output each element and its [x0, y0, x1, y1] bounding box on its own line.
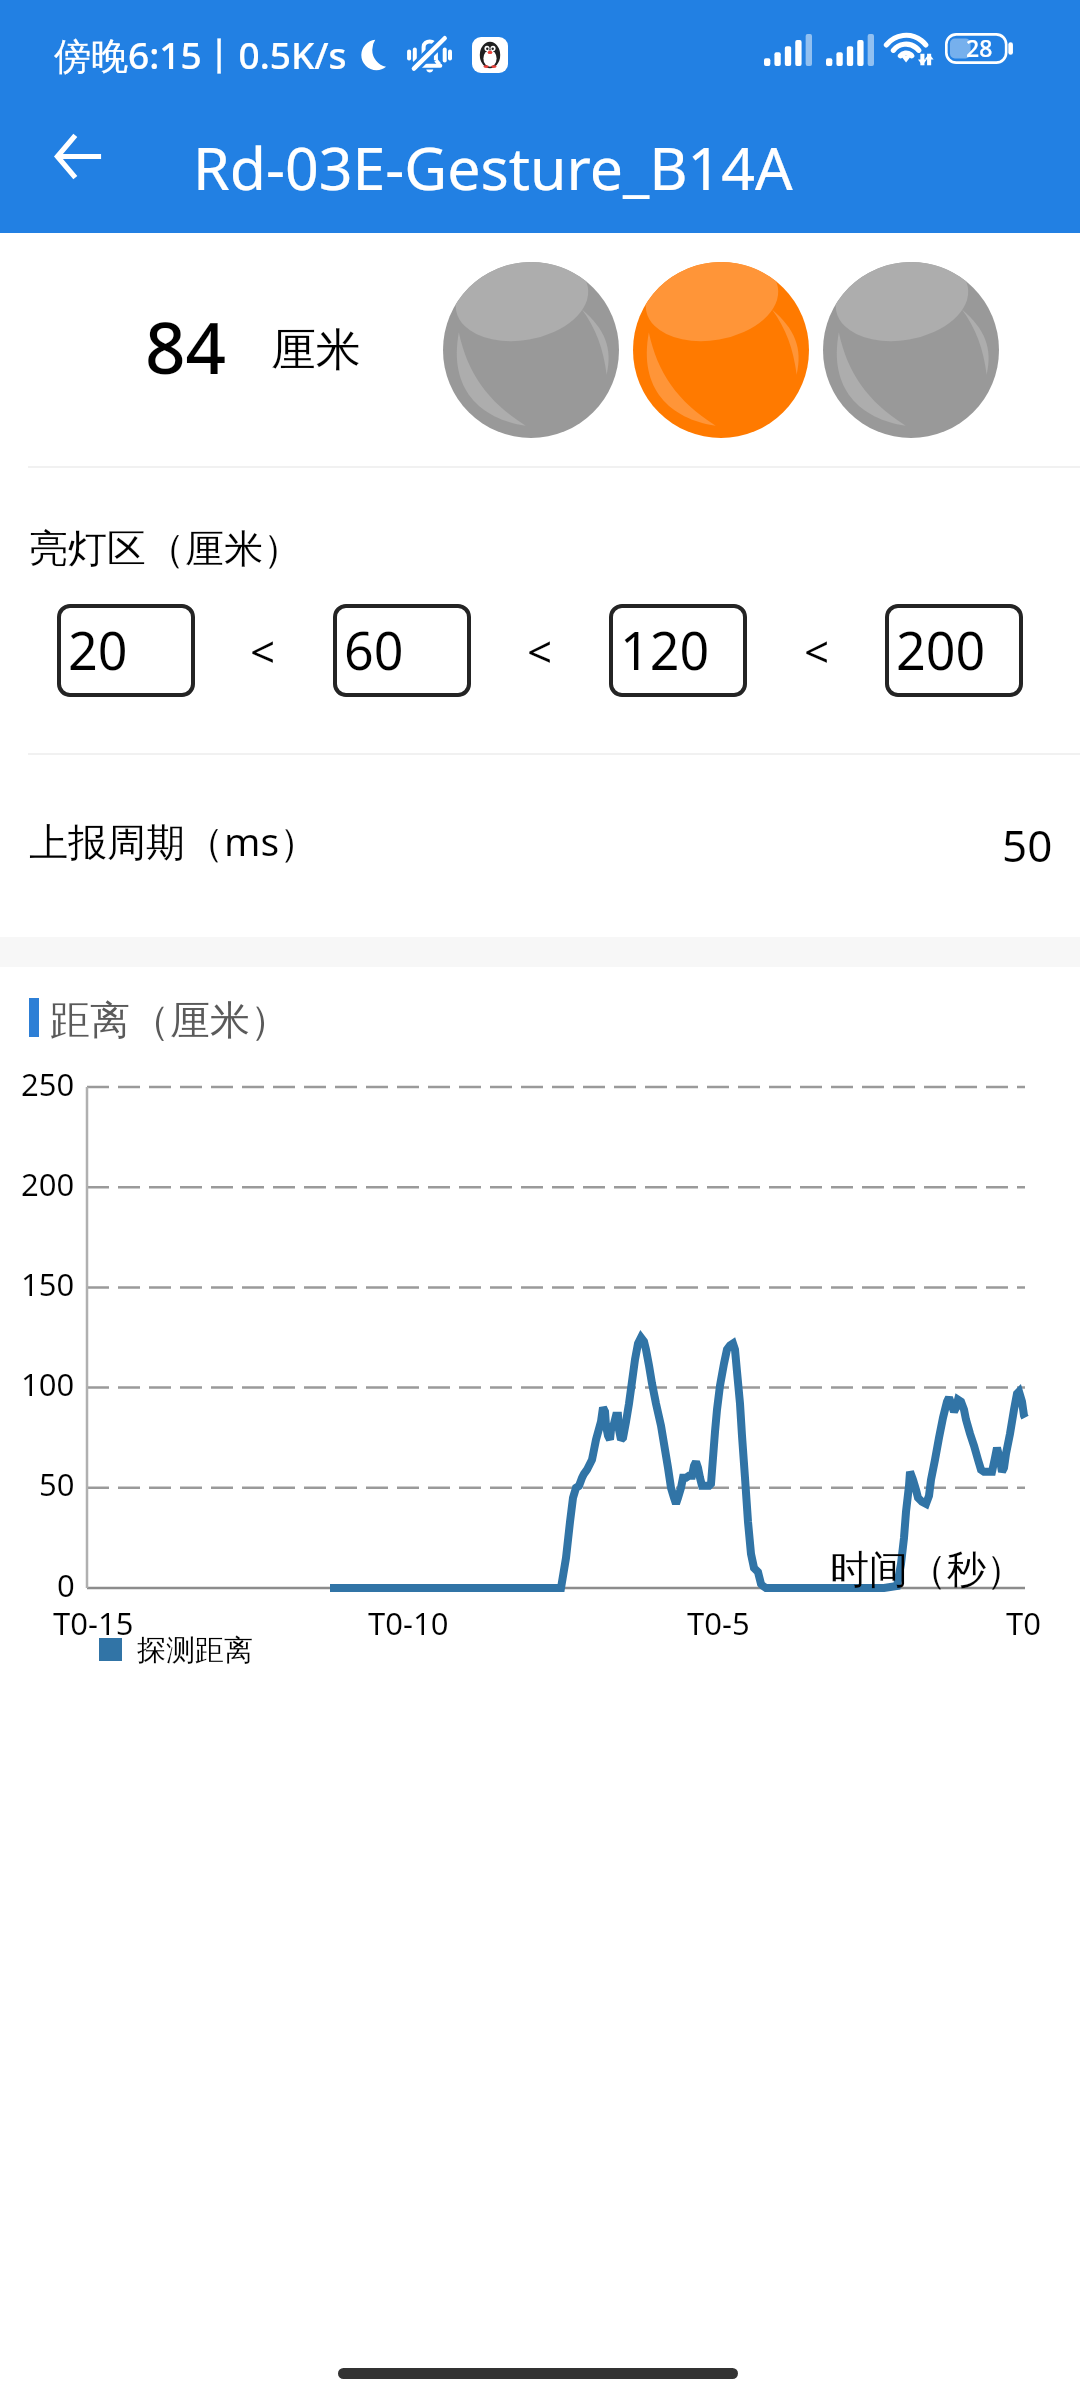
staticText: < [804, 621, 830, 681]
staticText: < [250, 621, 276, 681]
staticText: 50 [1002, 815, 1053, 875]
staticText: 亮灯区（厘米） [29, 524, 302, 573]
staticText: 84 [145, 298, 227, 395]
staticText: T0-5 [687, 1602, 750, 1644]
staticText: 200 [21, 1163, 75, 1205]
staticText: 120 [620, 614, 710, 685]
staticText: 100 [21, 1363, 75, 1405]
button[interactable]: 60 [333, 604, 471, 697]
button[interactable]: 20 [57, 604, 195, 697]
staticText: 150 [21, 1263, 75, 1305]
staticText: Rd-03E-Gesture_B14A [193, 127, 793, 207]
staticText: 0 [57, 1564, 75, 1606]
staticText: 时间（秒） [830, 1545, 1025, 1594]
button[interactable]: 84 [0, 235, 1080, 466]
staticText: 250 [21, 1063, 75, 1105]
staticText: 距离（厘米） [50, 995, 290, 1045]
staticText: 200 [896, 614, 986, 685]
staticText: 50 [39, 1463, 75, 1505]
staticText: 20 [68, 614, 128, 685]
staticText: T0-15 [53, 1602, 134, 1644]
staticText: T0 [1006, 1602, 1041, 1644]
staticText: 傍晚6:15丨0.5K/s [54, 29, 347, 80]
button[interactable]: 120 [609, 604, 747, 697]
staticText: 28 [966, 32, 993, 63]
button[interactable]: 上报周期（ms） [0, 755, 1080, 937]
staticText: T0-10 [368, 1602, 449, 1644]
button[interactable]: 200 [885, 604, 1023, 697]
staticText: 探测距离 [137, 1632, 253, 1669]
staticText: < [527, 621, 553, 681]
staticText: 厘米 [271, 322, 361, 379]
staticText: 60 [344, 614, 404, 685]
staticText: 上报周期（ms） [29, 814, 319, 867]
button[interactable]: Back [24, 101, 134, 211]
